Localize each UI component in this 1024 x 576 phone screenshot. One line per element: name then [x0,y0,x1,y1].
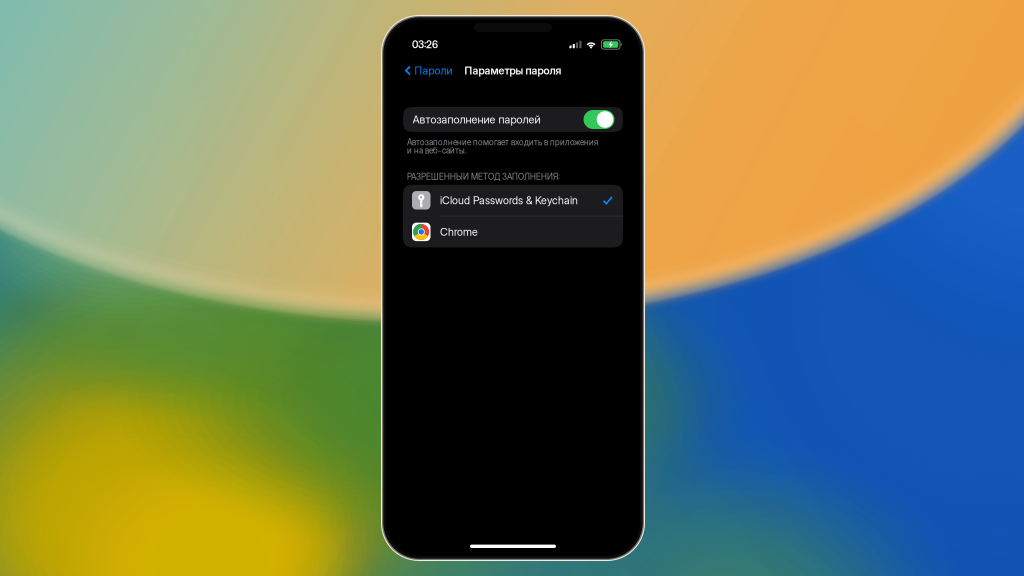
button[interactable]: iCloud Passwords & Keychain [403,185,623,216]
staticText: iCloud Passwords & Keychain [440,194,578,207]
staticText: 03:26 [412,38,438,51]
button[interactable]: Chrome [403,216,623,247]
button[interactable]: Пароли [403,59,454,82]
staticText: Автозаполнение помогает входить в прилож… [407,137,598,147]
staticText: и на веб-сайты. [407,146,467,156]
staticText: Пароли [414,64,452,77]
staticText: РАЗРЕШЕННЫЙ МЕТОД ЗАПОЛНЕНИЯ: [407,172,560,182]
staticText: Автозаполнение паролей [412,113,540,126]
button[interactable]: Автозаполнение паролей [583,110,614,129]
staticText: Параметры пароля [464,64,561,77]
staticText: Chrome [440,225,478,238]
